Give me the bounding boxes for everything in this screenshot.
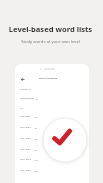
button[interactable]: My Flashcards [15,93,89,104]
staticText: HSK Level 6 [20,169,32,172]
staticText: 24 [36,98,39,100]
staticText: HSK Level 3 [20,137,32,140]
button[interactable]: HSK Level 3 [15,133,89,144]
staticText: HSK Level 5 [20,158,32,161]
staticText: My Flashcards [20,97,34,100]
button[interactable]: HSK Level 1 [15,111,89,122]
button[interactable]: Back [16,75,29,84]
staticText: 150 [34,127,38,129]
staticText: HSK Level 1 [20,115,32,118]
staticText: 600 [34,149,38,151]
staticText: HSK Level 4 [20,148,32,151]
button[interactable]: HSK Level 2 [15,122,89,133]
staticText: Study words at your own level [0,39,102,45]
button[interactable]: HSK Level 5 [15,154,89,165]
staticText: 2500 [34,170,39,172]
button[interactable]: Selected wordbook [40,112,90,162]
staticText: Select Wordbook [15,77,85,80]
staticText: WORDBOOKS [20,88,31,90]
staticText: 1300 [34,159,39,161]
staticText: 300 [34,138,38,140]
button[interactable]: HSK Level 6 [15,165,89,176]
staticText: HSK Level 2 [20,126,32,129]
button[interactable]: HSK Level 4 [15,144,89,155]
staticText: HSK [20,107,24,109]
staticText: 150 [34,116,38,118]
staticText: Level-based word lists [0,24,102,34]
